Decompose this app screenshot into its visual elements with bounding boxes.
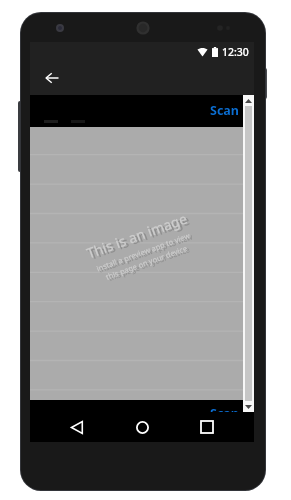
staticText: Scan <box>210 405 239 417</box>
staticText: install a preview app to view <box>95 230 191 274</box>
button[interactable]: Scroll down <box>243 401 254 412</box>
button[interactable]: Back <box>42 68 62 88</box>
staticText: This is an image <box>84 209 190 263</box>
button[interactable]: Scan <box>210 102 239 119</box>
staticText: 12:30 <box>222 45 249 59</box>
staticText: this page on your device <box>107 244 191 283</box>
staticText: this page on your device <box>104 243 188 282</box>
button[interactable]: Back <box>62 412 92 442</box>
button[interactable]: Scroll up <box>243 95 254 106</box>
button[interactable]: Recents <box>192 412 222 442</box>
staticText: This is an image <box>86 210 192 264</box>
staticText: install a preview app to view <box>97 231 194 275</box>
button[interactable]: Home <box>127 412 157 442</box>
